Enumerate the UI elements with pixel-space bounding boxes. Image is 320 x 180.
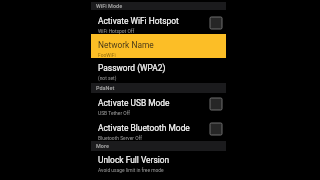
- button[interactable]: Toggle Activate USB Mode: [210, 98, 222, 110]
- button[interactable]: Activate WiFi Hotspot: [91, 10, 226, 34]
- button[interactable]: Toggle Activate WiFi Hotspot: [210, 17, 222, 29]
- staticText: Avoid usage limit in free mode: [98, 167, 164, 173]
- button[interactable]: Network Name: [91, 34, 226, 58]
- button[interactable]: Toggle Activate Bluetooth Mode: [210, 123, 222, 135]
- staticText: USB Tether Off: [98, 110, 131, 116]
- button[interactable]: Activate USB Mode: [91, 93, 226, 118]
- staticText: WiFi Hotspot Off: [98, 28, 135, 34]
- staticText: PdaNet: [96, 85, 115, 91]
- staticText: Password (WPA2): [98, 63, 166, 73]
- staticText: FooWiFi: [98, 52, 116, 58]
- staticText: WiFi Mode: [96, 3, 123, 9]
- staticText: Activate WiFi Hotspot: [98, 16, 179, 26]
- staticText: Activate USB Mode: [98, 98, 170, 108]
- staticText: Network Name: [98, 40, 154, 50]
- button[interactable]: Password (WPA2): [91, 58, 226, 83]
- button[interactable]: Unlock Full Version: [91, 151, 226, 176]
- staticText: Activate Bluetooth Mode: [98, 123, 190, 133]
- staticText: More: [96, 143, 109, 149]
- button[interactable]: Activate Bluetooth Mode: [91, 118, 226, 141]
- staticText: (not set): [98, 75, 117, 81]
- staticText: Unlock Full Version: [98, 155, 170, 165]
- staticText: Bluetooth Server Off: [98, 135, 142, 141]
